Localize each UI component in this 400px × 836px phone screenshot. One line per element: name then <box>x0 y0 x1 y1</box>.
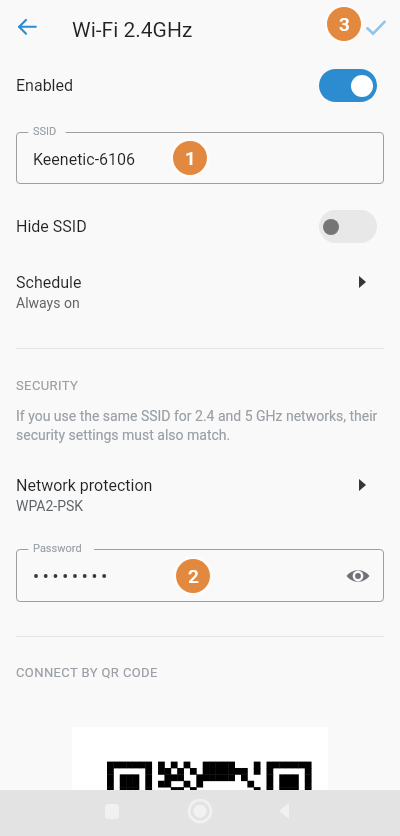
button[interactable]: Show password <box>340 558 376 594</box>
staticText: Enabled <box>16 76 74 95</box>
staticText: Hide SSID <box>16 217 87 236</box>
staticText: If you use the same SSID for 2.4 and 5 G… <box>16 408 384 444</box>
button[interactable]: Off <box>319 210 377 243</box>
button[interactable]: Home <box>176 790 224 832</box>
staticText: Network protection <box>16 476 153 495</box>
staticText: CONNECT BY QR CODE <box>16 665 158 680</box>
staticText: Keenetic-6106 <box>33 150 136 169</box>
button[interactable]: Back <box>5 5 49 49</box>
staticText: Password <box>33 542 82 555</box>
staticText: 2 <box>188 565 199 587</box>
button[interactable]: On <box>319 69 377 102</box>
staticText: Wi-Fi 2.4GHz <box>72 18 193 43</box>
staticText: 1 <box>185 147 196 169</box>
button[interactable]: Save <box>356 7 396 47</box>
staticText: WPA2-PSK <box>16 498 84 514</box>
staticText: Schedule <box>16 273 82 292</box>
staticText: Always on <box>16 295 80 311</box>
button[interactable]: Hide SSID <box>0 205 400 247</box>
staticText: SSID <box>33 125 57 138</box>
staticText: 3 <box>339 13 350 35</box>
button[interactable]: Schedule <box>0 266 400 318</box>
staticText: SECURITY <box>16 378 79 393</box>
button[interactable]: Recent apps <box>88 790 136 832</box>
button[interactable]: Enabled <box>0 62 400 108</box>
button[interactable]: Network protection <box>0 469 400 521</box>
